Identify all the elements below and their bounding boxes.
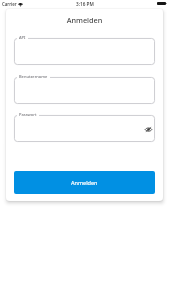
button[interactable]	[14, 115, 155, 142]
button[interactable]	[14, 77, 155, 104]
staticText: 3:16 PM	[76, 1, 94, 7]
staticText: Passwort	[19, 112, 37, 117]
button[interactable]: Show password	[143, 124, 153, 134]
staticText: Benutzername	[19, 74, 48, 79]
staticText: Anmelden	[6, 15, 163, 25]
staticText: API	[19, 35, 26, 40]
staticText: Anmelden	[71, 179, 98, 186]
staticText: Carrier	[2, 1, 17, 7]
button[interactable]: Anmelden	[14, 171, 155, 194]
button[interactable]	[14, 38, 155, 65]
